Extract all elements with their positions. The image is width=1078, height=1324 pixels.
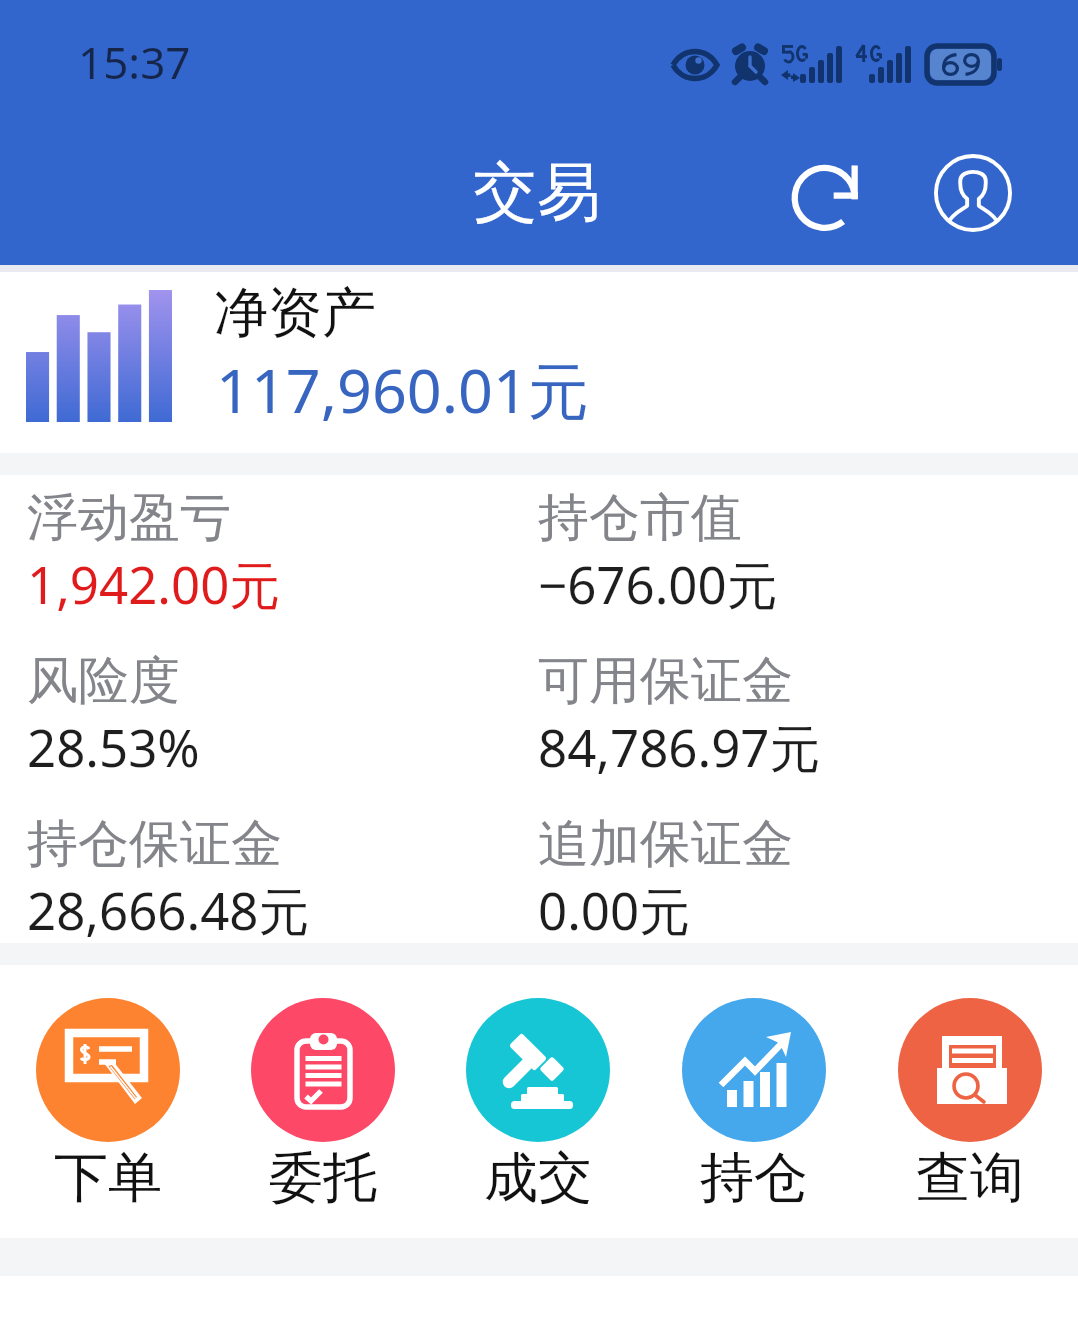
staticText: 持仓保证金 [27,812,282,876]
button[interactable]: 查询 [862,998,1078,1212]
button[interactable]: 成交 [430,998,646,1212]
button[interactable]: Refresh [780,145,876,241]
staticText: −676.00元 [538,549,778,619]
staticText: 成交 [484,1144,592,1212]
staticText: 委托 [269,1144,377,1212]
staticText: 84,786.97元 [538,712,821,782]
staticText: 风险度 [27,649,180,713]
staticText: 交易 [473,152,601,233]
staticText: 0.00元 [538,875,691,945]
staticText: 下单 [54,1144,162,1212]
staticText: 净资产 [214,279,376,347]
button[interactable]: 委托 [215,998,430,1212]
staticText: 28,666.48元 [27,875,310,945]
staticText: 查询 [916,1144,1024,1212]
staticText: 浮动盈亏 [27,486,231,550]
staticText: 117,960.01元 [216,348,589,431]
staticText: 可用保证金 [538,649,793,713]
button[interactable]: 下单 [0,998,215,1212]
staticText: 1,942.00元 [27,549,281,619]
button[interactable]: 持仓 [646,998,862,1212]
button[interactable]: 净资产 [0,272,1078,453]
button[interactable]: Account [925,145,1021,241]
staticText: 持仓市值 [538,486,742,550]
staticText: 持仓 [700,1144,808,1212]
staticText: 15:37 [78,32,191,92]
staticText: 28.53% [27,712,200,781]
staticText: 追加保证金 [538,812,793,876]
